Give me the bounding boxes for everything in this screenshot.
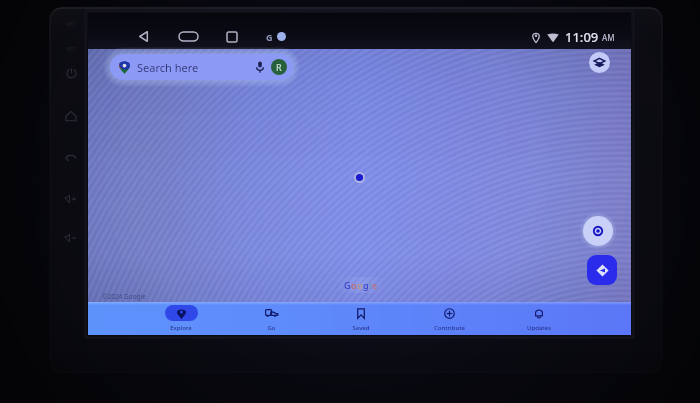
button[interactable]: Contribute bbox=[405, 302, 494, 335]
staticText: Updates bbox=[527, 324, 551, 332]
button[interactable]: Map layers bbox=[589, 52, 610, 73]
staticText: MIC bbox=[66, 21, 76, 28]
button[interactable]: Back bbox=[130, 25, 156, 48]
staticText: l bbox=[369, 279, 372, 291]
staticText: Contribute bbox=[434, 324, 465, 332]
staticText: Explore bbox=[170, 324, 192, 332]
staticText: ©2024 Google bbox=[102, 292, 146, 301]
button[interactable]: Updates bbox=[494, 302, 583, 335]
button[interactable]: Recent apps bbox=[219, 25, 245, 48]
staticText: g bbox=[363, 279, 369, 291]
button[interactable]: Explore bbox=[136, 302, 226, 335]
button[interactable]: Home bbox=[174, 25, 202, 48]
staticText: G bbox=[266, 31, 273, 43]
button[interactable]: Go bbox=[226, 302, 316, 335]
staticText: G bbox=[344, 279, 351, 291]
button[interactable]: Saved bbox=[316, 302, 405, 335]
staticText: o bbox=[357, 279, 363, 291]
staticText: Search here bbox=[137, 60, 199, 75]
button[interactable]: Directions bbox=[587, 255, 617, 285]
staticText: AM bbox=[602, 32, 615, 43]
staticText: R bbox=[276, 61, 282, 73]
button[interactable]: Account bbox=[271, 59, 287, 75]
staticText: o bbox=[351, 279, 357, 291]
button[interactable]: Search here bbox=[110, 54, 293, 80]
staticText: 11:09 bbox=[565, 28, 599, 46]
staticText: e bbox=[372, 279, 378, 291]
staticText: Saved bbox=[352, 324, 370, 332]
button[interactable]: My location bbox=[583, 216, 613, 246]
staticText: Go bbox=[267, 324, 276, 332]
staticText: RST bbox=[67, 46, 76, 53]
